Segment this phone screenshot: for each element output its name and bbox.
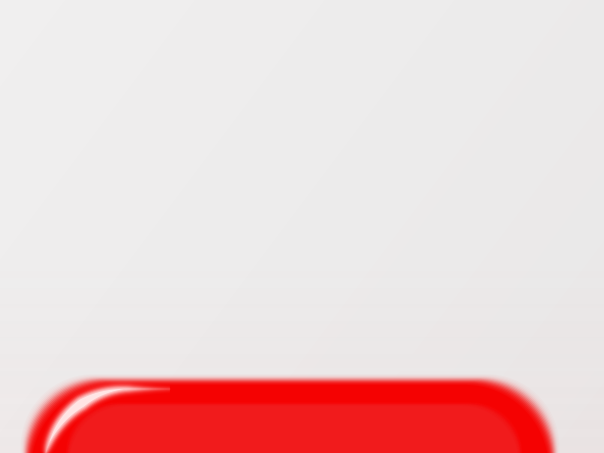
button[interactable]: Red button <box>0 0 604 453</box>
